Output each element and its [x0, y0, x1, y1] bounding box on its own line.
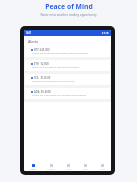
- button[interactable]: SOL $120.00: [25, 74, 110, 85]
- staticText: BTC $45,000: [34, 48, 50, 52]
- staticText: Trade: [66, 168, 72, 171]
- staticText: 9:41: [26, 31, 32, 35]
- staticText: Alert me if Ethereum retests key support: [32, 65, 80, 68]
- staticText: More: [100, 168, 106, 171]
- button[interactable]: Alerts: [24, 160, 42, 171]
- staticText: Markets: [47, 168, 55, 171]
- button[interactable]: Wallet: [77, 160, 94, 171]
- staticText: Notify me when Bitcoin breaks above resi…: [32, 51, 89, 54]
- button[interactable]: ADA $0.4500: [25, 88, 110, 99]
- staticText: SOL $120.00: [34, 76, 51, 80]
- staticText: ETH $2,800: [34, 62, 49, 66]
- button[interactable]: Trade: [60, 160, 77, 171]
- staticText: Peace of Mind: [45, 2, 93, 11]
- staticText: Momentum breakout on Solana pair: [32, 79, 75, 82]
- staticText: Wallet: [82, 168, 89, 171]
- button[interactable]: More: [94, 160, 111, 171]
- staticText: Alerts: [28, 39, 39, 44]
- button[interactable]: Markets: [42, 160, 60, 171]
- staticText: Alerts: [30, 168, 36, 171]
- button[interactable]: BTC $45,000: [25, 46, 110, 57]
- button[interactable]: Add alert: [104, 39, 108, 43]
- button[interactable]: ETH $2,800: [25, 60, 110, 71]
- staticText: ADA $0.4500: [34, 90, 51, 94]
- staticText: Watch for a dip entry on Cardano spot ma…: [32, 93, 86, 96]
- staticText: Never miss another trading opportunity: [40, 13, 97, 17]
